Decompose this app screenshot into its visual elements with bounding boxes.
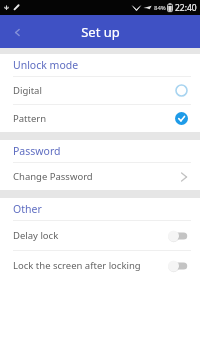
button[interactable]: Back: [6, 21, 28, 43]
staticText: Delay lock: [13, 229, 167, 242]
staticText: Pattern: [13, 112, 175, 125]
staticText: Change Password: [13, 170, 180, 183]
staticText: 84%: [154, 4, 166, 12]
staticText: Set up: [81, 23, 120, 41]
button[interactable]: Delay lock: [0, 221, 200, 250]
staticText: Password: [13, 144, 61, 158]
button[interactable]: Digital: [0, 77, 200, 104]
button[interactable]: Pattern: [0, 105, 200, 132]
staticText: Digital: [13, 84, 175, 97]
staticText: Unlock mode: [13, 58, 79, 72]
staticText: 22:40: [175, 2, 197, 14]
staticText: Lock the screen after locking: [13, 259, 167, 272]
button[interactable]: Change Password: [0, 163, 200, 190]
button[interactable]: Lock the screen after locking: [0, 251, 200, 280]
staticText: Other: [13, 202, 42, 216]
